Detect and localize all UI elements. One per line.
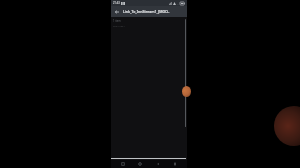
staticText: 1 item — [113, 19, 121, 23]
staticText: 21:43 — [113, 1, 120, 5]
button[interactable]: Back — [153, 160, 163, 168]
button[interactable]: More — [170, 160, 180, 168]
button[interactable]: Home — [135, 160, 145, 168]
button[interactable]: Back — [113, 8, 120, 15]
staticText: .. — [177, 2, 179, 5]
staticText: Link_To_InnStream1_[MOD.. — [123, 9, 170, 14]
button[interactable]: Recents — [118, 160, 128, 168]
staticText: 480 x 360 / — [113, 25, 125, 28]
button[interactable]: Link_To_InnStream1_[MOD.. — [123, 9, 185, 14]
